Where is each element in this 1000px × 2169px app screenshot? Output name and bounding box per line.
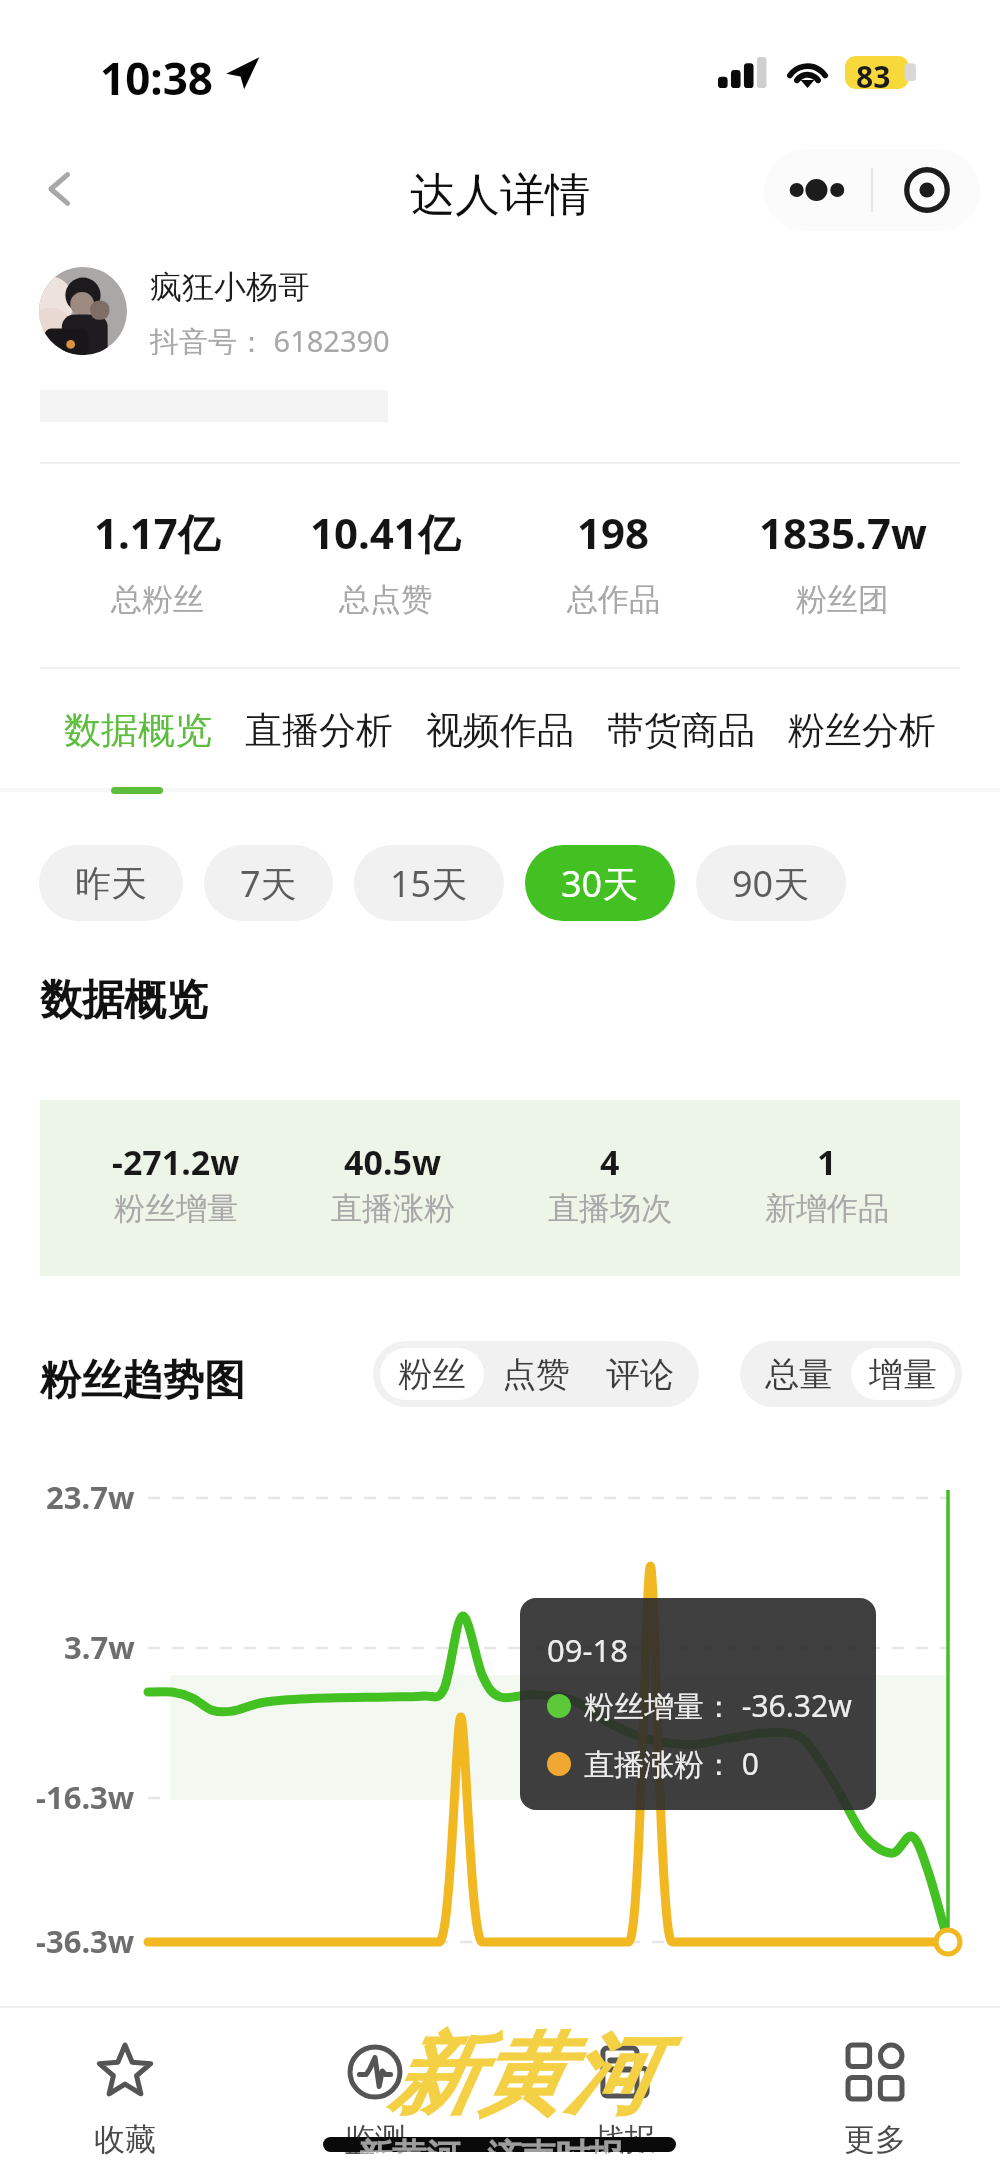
staticText: 数据概览 (40, 974, 208, 1027)
button[interactable]: 视频作品 (426, 707, 574, 754)
staticText: 点赞 (502, 1353, 570, 1396)
staticText: 新黄河 · 济南时报 (358, 2132, 624, 2169)
staticText: 1 (817, 1139, 837, 1185)
staticText: 10.41亿 (310, 504, 460, 561)
staticText: -16.3w (36, 1776, 135, 1818)
staticText: 数据概览 (64, 707, 212, 754)
staticText: -36.3w (36, 1920, 135, 1962)
button[interactable]: 粉丝分析 (788, 707, 936, 754)
staticText: 90天 (732, 859, 810, 908)
staticText: 带货商品 (607, 707, 755, 754)
staticText: 10:38 (100, 48, 214, 108)
button[interactable]: 收藏 (0, 2045, 250, 2159)
button[interactable]: 15天 (354, 845, 504, 921)
staticText: 收藏 (94, 2120, 156, 2159)
button[interactable]: 更多 (750, 2045, 1000, 2159)
staticText: 40.5w (344, 1139, 442, 1185)
staticText: 粉丝分析 (788, 707, 936, 754)
button[interactable]: 总量 (747, 1348, 851, 1400)
button[interactable]: 直播分析 (245, 707, 393, 754)
button[interactable]: 疯狂小杨哥 (39, 267, 390, 355)
staticText: -271.2w (112, 1139, 240, 1185)
staticText: 3.7w (64, 1626, 135, 1668)
button[interactable]: 带货商品 (607, 707, 755, 754)
button[interactable]: 增量 (851, 1348, 955, 1400)
staticText: 评论 (606, 1353, 674, 1396)
button[interactable]: Back (28, 157, 92, 221)
staticText: 新黄河 (388, 2020, 652, 2131)
staticText: 粉丝增量 (114, 1189, 238, 1228)
staticText: 直播分析 (245, 707, 393, 754)
staticText: 视频作品 (426, 707, 574, 754)
staticText: 198 (577, 504, 650, 561)
staticText: 1.17亿 (94, 504, 220, 561)
staticText: 15天 (390, 859, 468, 908)
staticText: 7天 (240, 859, 297, 908)
staticText: 09-18 (547, 1629, 628, 1671)
button[interactable]: 7天 (204, 845, 333, 921)
button[interactable]: 30天 (525, 845, 675, 921)
staticText: 达人详情 (410, 167, 590, 224)
button[interactable]: 数据概览 (64, 707, 212, 754)
staticText: 总粉丝 (111, 580, 204, 619)
button[interactable]: 粉丝 (380, 1348, 484, 1400)
staticText: 粉丝增量： -36.32w (584, 1685, 852, 1726)
button[interactable]: More options (764, 149, 871, 231)
staticText: 粉丝团 (796, 580, 889, 619)
button[interactable]: 昨天 (39, 845, 183, 921)
button[interactable]: 90天 (696, 845, 846, 921)
staticText: 1835.7w (759, 504, 927, 561)
staticText: 昨天 (75, 861, 147, 906)
staticText: 直播场次 (548, 1189, 672, 1228)
staticText: 4 (600, 1139, 620, 1185)
staticText: 总作品 (567, 580, 660, 619)
staticText: 更多 (844, 2120, 906, 2159)
staticText: 疯狂小杨哥 (150, 267, 310, 307)
staticText: 83 (856, 56, 891, 89)
staticText: 30天 (561, 859, 639, 908)
button[interactable]: Close (873, 149, 980, 231)
staticText: 23.7w (46, 1476, 135, 1518)
staticText: 新增作品 (765, 1189, 889, 1228)
button[interactable]: 战报 (500, 2045, 750, 2159)
staticText: 抖音号： 6182390 (150, 321, 390, 355)
staticText: 战报 (594, 2120, 656, 2159)
staticText: 直播涨粉 (331, 1189, 455, 1228)
staticText: 总点赞 (339, 580, 432, 619)
staticText: 粉丝 (398, 1353, 466, 1396)
button[interactable]: 评论 (588, 1348, 692, 1400)
staticText: 增量 (869, 1353, 937, 1396)
staticText: 总量 (765, 1353, 833, 1396)
staticText: 粉丝趋势图 (40, 1355, 245, 1407)
button[interactable]: 点赞 (484, 1348, 588, 1400)
staticText: 监测 (344, 2120, 406, 2159)
button[interactable]: 监测 (250, 2045, 500, 2159)
staticText: 直播涨粉： 0 (584, 1743, 759, 1784)
